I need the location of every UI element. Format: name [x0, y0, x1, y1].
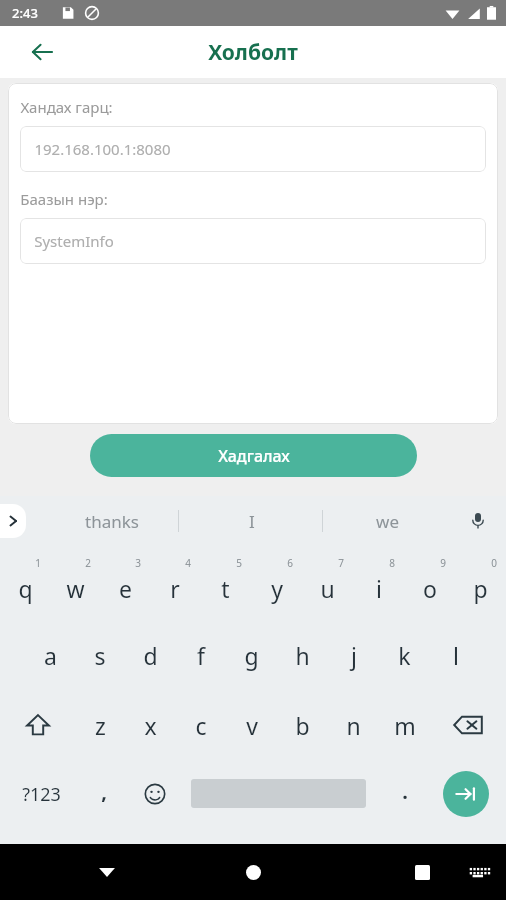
- staticText: SystemInfo: [34, 231, 114, 251]
- staticText: z: [95, 710, 106, 741]
- staticText: 9: [440, 556, 446, 570]
- staticText: s: [94, 640, 106, 671]
- button[interactable]: x: [125, 690, 175, 760]
- button[interactable]: SystemInfo: [20, 218, 486, 264]
- staticText: k: [398, 640, 411, 671]
- button[interactable]: 4: [150, 550, 200, 620]
- button[interactable]: More suggestions: [0, 504, 26, 538]
- staticText: i: [376, 573, 382, 604]
- staticText: 6: [287, 556, 293, 570]
- staticText: Хандах гарц:: [20, 97, 113, 117]
- staticText: 1: [35, 556, 41, 570]
- button[interactable]: Backspace: [430, 690, 506, 760]
- button[interactable]: g: [226, 620, 277, 690]
- button[interactable]: c: [175, 690, 226, 760]
- button[interactable]: I: [190, 498, 314, 544]
- button[interactable]: f: [175, 620, 226, 690]
- button[interactable]: 192.168.100.1:8080: [20, 126, 486, 172]
- button[interactable]: Enter: [443, 771, 489, 817]
- button[interactable]: h: [277, 620, 328, 690]
- button[interactable]: z: [75, 690, 125, 760]
- button[interactable]: 7: [302, 550, 353, 620]
- staticText: Баазын нэр:: [20, 189, 108, 209]
- staticText: j: [351, 640, 357, 671]
- button[interactable]: b: [277, 690, 328, 760]
- button[interactable]: Хадгалах: [90, 434, 417, 477]
- button[interactable]: j: [328, 620, 379, 690]
- button[interactable]: 6: [251, 550, 302, 620]
- staticText: thanks: [85, 510, 139, 533]
- button[interactable]: Emoji: [130, 764, 180, 824]
- button[interactable]: Back: [83, 848, 131, 896]
- staticText: e: [119, 573, 132, 604]
- staticText: 192.168.100.1:8080: [34, 139, 171, 159]
- staticText: b: [295, 710, 310, 741]
- button[interactable]: Recent apps: [398, 848, 446, 896]
- staticText: y: [271, 573, 283, 604]
- staticText: 7: [338, 556, 344, 570]
- staticText: x: [144, 710, 157, 741]
- staticText: 4: [185, 556, 191, 570]
- staticText: l: [453, 640, 459, 671]
- staticText: ?123: [22, 782, 61, 807]
- staticText: o: [423, 573, 437, 604]
- staticText: d: [143, 640, 158, 671]
- button[interactable]: 3: [100, 550, 150, 620]
- staticText: n: [346, 710, 361, 741]
- staticText: h: [295, 640, 310, 671]
- button[interactable]: 2: [50, 550, 100, 620]
- button[interactable]: we: [332, 498, 442, 544]
- button[interactable]: Switch keyboard: [458, 852, 498, 892]
- staticText: q: [18, 573, 33, 604]
- button[interactable]: a: [25, 620, 75, 690]
- staticText: ,: [101, 778, 107, 805]
- button[interactable]: d: [125, 620, 175, 690]
- button[interactable]: Back: [20, 30, 64, 74]
- staticText: v: [246, 710, 258, 741]
- staticText: we: [376, 510, 399, 533]
- button[interactable]: k: [379, 620, 430, 690]
- button[interactable]: ?123: [8, 764, 74, 824]
- button[interactable]: l: [430, 620, 481, 690]
- button[interactable]: .: [380, 764, 430, 824]
- staticText: m: [394, 710, 416, 741]
- staticText: 2: [85, 556, 91, 570]
- staticText: a: [44, 640, 57, 671]
- button[interactable]: 0: [455, 550, 506, 620]
- staticText: 8: [389, 556, 395, 570]
- staticText: r: [170, 573, 180, 604]
- staticText: p: [473, 573, 488, 604]
- button[interactable]: v: [226, 690, 277, 760]
- button[interactable]: 5: [200, 550, 251, 620]
- staticText: Хадгалах: [218, 445, 290, 467]
- button[interactable]: 9: [404, 550, 455, 620]
- staticText: 0: [491, 556, 497, 570]
- button[interactable]: s: [75, 620, 125, 690]
- staticText: I: [249, 510, 255, 533]
- staticText: u: [320, 573, 335, 604]
- button[interactable]: 1: [0, 550, 50, 620]
- button[interactable]: Home: [229, 848, 277, 896]
- button[interactable]: Shift: [0, 690, 75, 760]
- staticText: c: [195, 710, 207, 741]
- button[interactable]: thanks: [50, 498, 174, 544]
- staticText: t: [221, 573, 230, 604]
- button[interactable]: m: [379, 690, 430, 760]
- staticText: .: [402, 778, 408, 805]
- staticText: g: [244, 640, 259, 671]
- staticText: Холболт: [208, 38, 298, 67]
- staticText: 5: [236, 556, 242, 570]
- staticText: 3: [135, 556, 141, 570]
- staticText: w: [66, 573, 85, 604]
- staticText: 2:43: [12, 4, 38, 22]
- button[interactable]: ,: [80, 764, 128, 824]
- button[interactable]: 8: [353, 550, 404, 620]
- button[interactable]: n: [328, 690, 379, 760]
- button[interactable]: Voice input: [460, 503, 496, 539]
- staticText: f: [197, 640, 205, 671]
